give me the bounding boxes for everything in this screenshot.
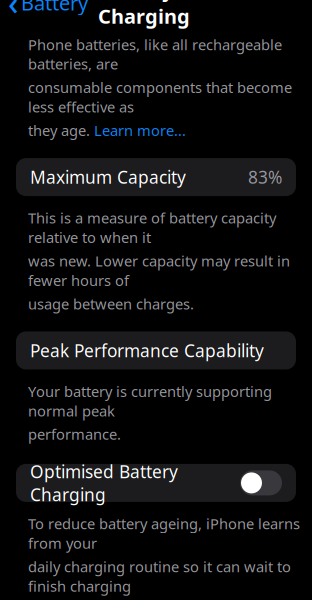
staticText: This is a measure of battery capacity re…	[28, 208, 276, 247]
staticText: Learn more...	[94, 121, 186, 140]
button[interactable]: ‹	[0, 0, 88, 28]
staticText: Your battery is currently supporting nor…	[28, 381, 272, 420]
staticText: usage between charges.	[28, 294, 194, 313]
staticText: Battery Health & Charging	[98, 0, 265, 29]
staticText: Optimised Battery Charging	[30, 460, 178, 506]
button[interactable]: Maximum Capacity	[16, 158, 296, 196]
staticText: they age.	[28, 121, 94, 140]
staticText: To reduce battery ageing, iPhone learns …	[28, 514, 300, 553]
button[interactable]: Learn more...	[94, 121, 186, 140]
button[interactable]: Peak Performance Capability	[16, 331, 296, 369]
staticText: Peak Performance Capability	[30, 339, 264, 362]
staticText: Battery	[21, 0, 88, 16]
staticText: 83%	[248, 166, 282, 189]
staticText: was new. Lower capacity may result in fe…	[28, 251, 290, 290]
staticText: ‹	[8, 0, 18, 24]
staticText: daily charging routine so it can wait to…	[28, 557, 291, 596]
staticText: consumable components that become less e…	[28, 78, 292, 117]
button[interactable]: Optimised Battery Charging	[16, 464, 296, 502]
staticText: performance.	[28, 424, 121, 444]
staticText: Phone batteries, like all rechargeable b…	[28, 35, 282, 74]
staticText: Maximum Capacity	[30, 166, 186, 189]
